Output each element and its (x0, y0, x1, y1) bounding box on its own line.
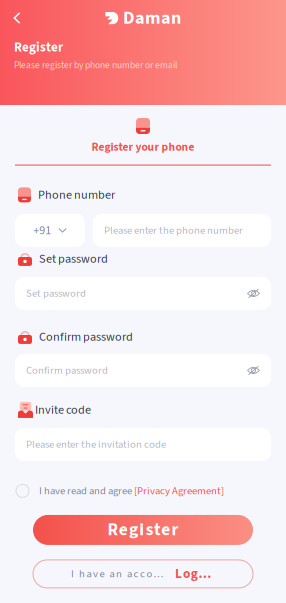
button[interactable]: Show password (247, 288, 260, 299)
staticText: Phone number (38, 186, 115, 204)
staticText: Please enter the invitation code (26, 437, 166, 452)
button[interactable]: Register your phone (15, 118, 271, 155)
staticText: Register (107, 518, 179, 542)
staticText: Daman (123, 5, 181, 31)
button[interactable]: Back (14, 7, 36, 29)
staticText: Register your phone (91, 139, 194, 155)
staticText: Confirm password (39, 328, 133, 346)
button[interactable]: Register (15, 515, 271, 545)
staticText: Register (14, 38, 63, 57)
button[interactable]: +91 (15, 214, 85, 247)
staticText: Please enter the phone number (104, 223, 243, 238)
staticText: Please register by phone number or email (14, 59, 177, 72)
button[interactable]: I have read and agree (15, 482, 271, 500)
staticText: Confirm password (26, 363, 108, 378)
staticText: I have an account (71, 566, 166, 581)
staticText: Set password (26, 286, 86, 301)
staticText: Invite code (35, 401, 91, 419)
staticText: +91 (33, 222, 51, 239)
button[interactable]: Show password (247, 365, 260, 376)
staticText: I have read and agree (39, 483, 132, 498)
staticText: Login (175, 564, 212, 583)
button[interactable]: I have an account (15, 560, 271, 588)
staticText: [Privacy Agreement] (134, 483, 224, 498)
staticText: Set password (39, 250, 108, 268)
